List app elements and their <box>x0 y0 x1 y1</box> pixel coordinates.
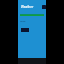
button[interactable]: Profile <box>42 5 46 9</box>
staticText: Weather <box>21 5 34 9</box>
staticText: Today <box>20 20 26 23</box>
